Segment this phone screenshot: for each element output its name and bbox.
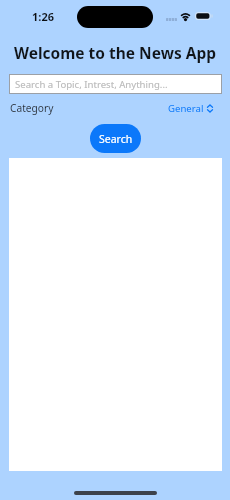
staticText: Welcome to the News App	[0, 42, 230, 63]
staticText: Search	[99, 132, 133, 146]
staticText: General	[168, 102, 204, 115]
button[interactable]: Select category: General	[168, 102, 213, 115]
button[interactable]: Search	[90, 124, 141, 153]
button[interactable]: Search a Topic, Intrest, Anything...	[9, 74, 222, 94]
staticText: Search a Topic, Intrest, Anything...	[15, 78, 168, 91]
staticText: 1:26	[32, 9, 54, 24]
staticText: Category	[10, 101, 54, 115]
